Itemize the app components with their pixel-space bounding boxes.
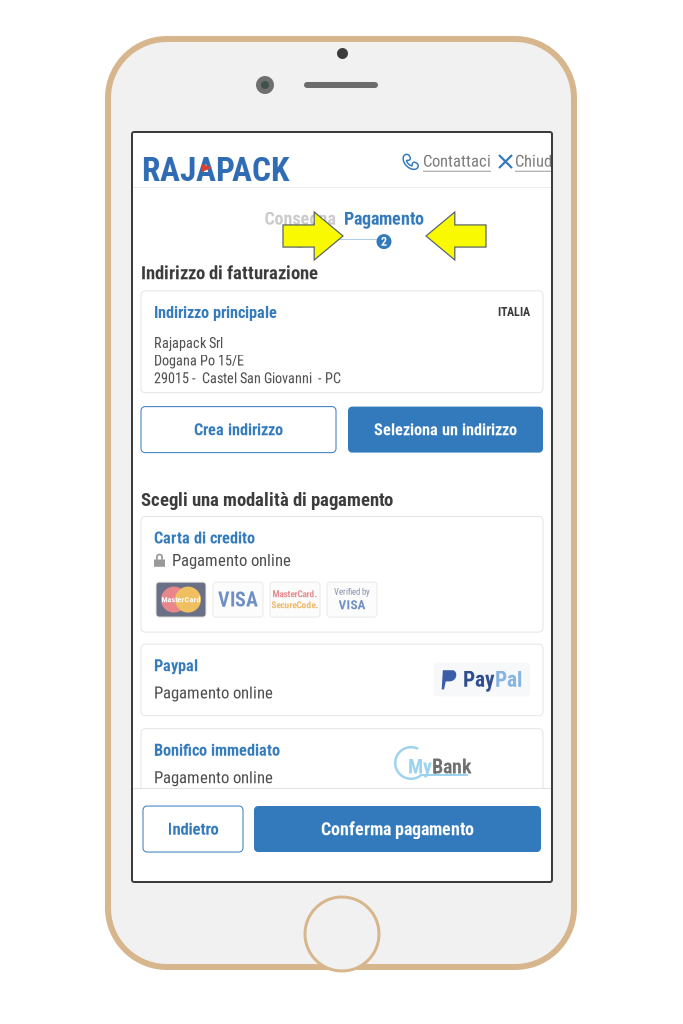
staticText: VISA xyxy=(338,597,365,612)
button[interactable]: Bonifico immediato xyxy=(141,729,543,800)
staticText: Paypal xyxy=(154,656,198,675)
staticText: MasterCard xyxy=(161,595,200,604)
button[interactable]: Contattaci xyxy=(403,151,491,172)
button[interactable]: Chiudi xyxy=(499,151,556,172)
staticText: Bonifico immediato xyxy=(154,741,280,760)
staticText: Seleziona un indirizzo xyxy=(374,420,517,439)
button[interactable]: Conferma pagamento xyxy=(254,806,541,852)
staticText: Chiudi xyxy=(515,151,556,171)
button[interactable]: Paypal xyxy=(141,644,543,716)
staticText: Verified by xyxy=(334,587,370,597)
staticText: Indirizzo di fatturazione xyxy=(141,262,318,284)
staticText: Dogana Po 15/E xyxy=(154,352,244,369)
staticText: Pal xyxy=(495,667,522,692)
staticText: Scegli una modalità di pagamento xyxy=(141,489,393,510)
staticText: Bank xyxy=(432,755,472,778)
staticText: Consegna xyxy=(264,208,335,229)
button[interactable]: Crea indirizzo xyxy=(141,407,336,453)
staticText: VISA xyxy=(218,588,258,611)
staticText: Pagamento online xyxy=(172,551,291,570)
staticText: Carta di credito xyxy=(154,528,255,548)
staticText: Pagamento online xyxy=(154,683,273,703)
staticText: SecureCode. xyxy=(271,600,318,610)
staticText: ITALIA xyxy=(498,305,530,319)
button[interactable]: Carta di credito xyxy=(141,516,543,632)
staticText: 29015 - Castel San Giovanni - PC xyxy=(154,370,341,387)
staticText: RAJAPACK xyxy=(142,150,289,189)
staticText: Rajapack Srl xyxy=(154,335,223,351)
button[interactable]: Seleziona un indirizzo xyxy=(348,407,543,453)
staticText: Contattaci xyxy=(423,151,491,171)
button[interactable]: Indietro xyxy=(143,806,243,852)
staticText: Pagamento xyxy=(344,208,424,229)
staticText: Pay xyxy=(463,667,495,692)
staticText: Conferma pagamento xyxy=(321,818,474,840)
staticText: Indirizzo principale xyxy=(154,303,277,322)
staticText: Crea indirizzo xyxy=(194,420,283,439)
staticText: 2 xyxy=(381,235,387,249)
staticText: Pagamento online xyxy=(154,768,273,787)
staticText: MasterCard. xyxy=(272,589,317,600)
staticText: My xyxy=(408,755,432,778)
staticText: Indietro xyxy=(167,819,218,839)
